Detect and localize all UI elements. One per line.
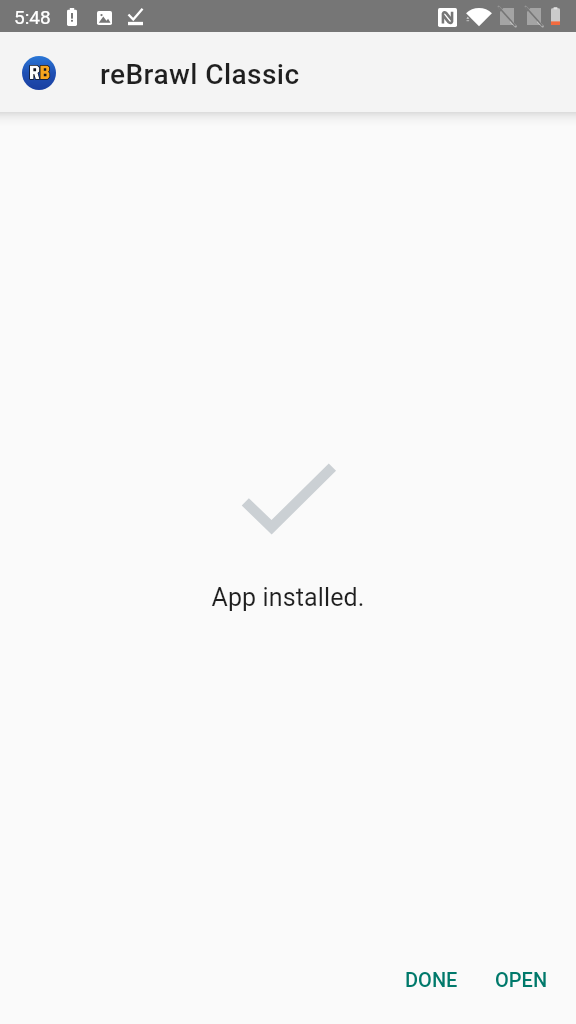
- button[interactable]: OPEN: [485, 959, 558, 1000]
- staticText: DONE: [405, 968, 458, 991]
- staticText: 5:48: [14, 6, 51, 28]
- staticText: OPEN: [495, 968, 548, 991]
- staticText: App installed.: [0, 583, 576, 612]
- button[interactable]: DONE: [395, 959, 468, 1000]
- staticText: reBrawl Classic: [100, 58, 300, 91]
- other: reBrawl Classic app icon: [22, 56, 56, 90]
